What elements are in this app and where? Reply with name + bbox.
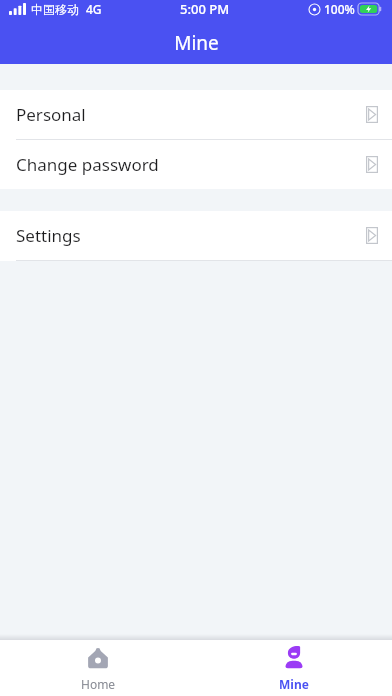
- button[interactable]: Settings: [0, 211, 392, 260]
- staticText: 5:00 PM: [180, 0, 230, 18]
- other: Open: [366, 227, 378, 244]
- staticText: Settings: [16, 224, 81, 247]
- staticText: Mine: [279, 676, 309, 690]
- staticText: 中国移动: [31, 2, 79, 17]
- staticText: Home: [81, 676, 116, 690]
- staticText: Change password: [16, 153, 159, 176]
- other: Open: [366, 156, 378, 173]
- staticText: Mine: [174, 30, 219, 56]
- button[interactable]: Home: [0, 640, 196, 696]
- other: Open: [366, 106, 378, 123]
- button[interactable]: Personal: [0, 90, 392, 139]
- staticText: 100%: [324, 1, 355, 17]
- staticText: 4G: [86, 1, 102, 17]
- button[interactable]: Mine: [196, 640, 392, 696]
- staticText: Personal: [16, 103, 86, 126]
- button[interactable]: Change password: [0, 140, 392, 189]
